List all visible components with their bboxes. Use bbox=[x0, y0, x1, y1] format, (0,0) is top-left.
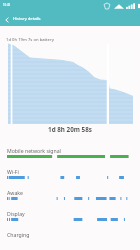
staticText: Awake bbox=[7, 189, 23, 196]
staticText: 1d 0h 19m 7s on battery bbox=[6, 37, 54, 43]
staticText: Charging bbox=[7, 231, 30, 238]
staticText: History details bbox=[13, 16, 41, 22]
staticText: Wi-Fi bbox=[7, 168, 19, 175]
button[interactable]: Charging bbox=[0, 231, 140, 250]
staticText: 1d 8h 20m 58s bbox=[0, 125, 140, 134]
button[interactable]: Awake bbox=[0, 189, 140, 210]
button[interactable]: Mobile network signal bbox=[0, 147, 140, 168]
button[interactable]: Display bbox=[0, 210, 140, 231]
button[interactable]: Navigate up bbox=[0, 13, 13, 26]
staticText: Mobile network signal bbox=[7, 147, 61, 154]
staticText: Display bbox=[7, 210, 25, 217]
button[interactable]: Wi-Fi bbox=[0, 168, 140, 189]
staticText: 10:43 bbox=[3, 3, 11, 7]
